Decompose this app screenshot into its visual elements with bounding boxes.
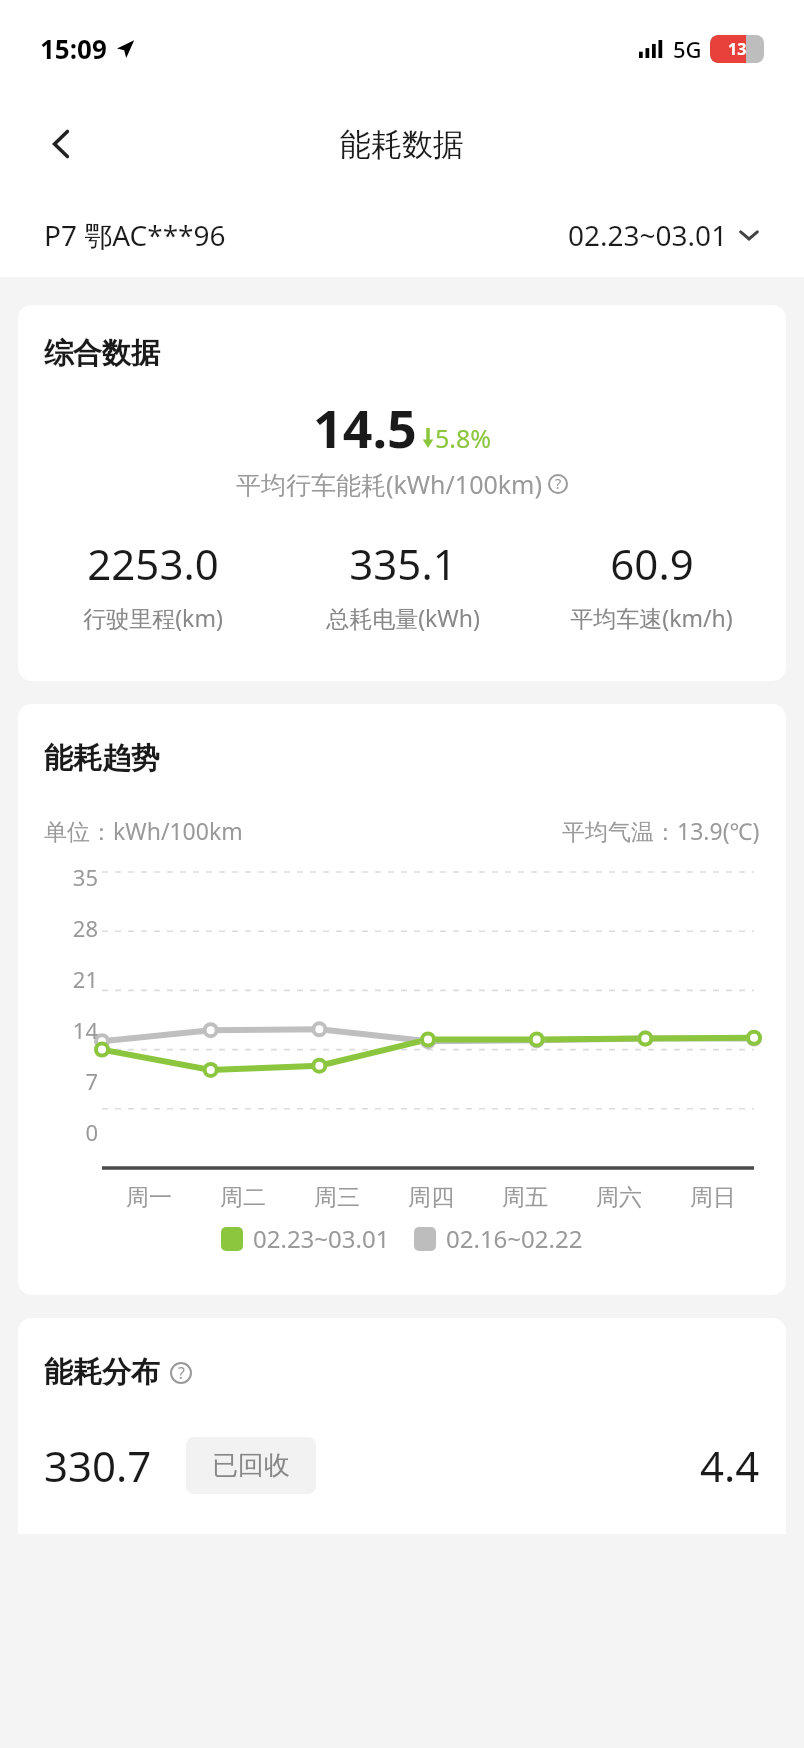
button[interactable]: 60.9 — [527, 535, 776, 633]
button[interactable]: 2253.0 — [28, 535, 278, 633]
staticText: 周一 — [126, 1183, 172, 1212]
staticText: 5G — [673, 34, 702, 64]
button[interactable]: 02.16~02.22 — [414, 1222, 583, 1255]
staticText: 已回收 — [212, 1449, 290, 1482]
staticText: 平均车速(km/h) — [570, 602, 733, 633]
staticText: 平均气温：13.9(℃) — [562, 815, 760, 846]
staticText: 21 — [72, 964, 98, 994]
staticText: 行驶里程(km) — [83, 602, 223, 633]
staticText: ? — [178, 1362, 185, 1384]
staticText: 7 — [85, 1066, 98, 1096]
staticText: 335.1 — [349, 535, 457, 592]
staticText: 4.4 — [700, 1437, 760, 1494]
staticText: 总耗电量(kWh) — [326, 602, 480, 633]
staticText: 能耗分布 — [44, 1354, 160, 1391]
staticText: 周四 — [408, 1183, 454, 1212]
staticText: 周五 — [502, 1183, 548, 1212]
staticText: 13 — [728, 38, 747, 60]
staticText: 02.23~03.01 — [253, 1222, 390, 1255]
staticText: 2253.0 — [87, 535, 219, 592]
staticText: 0 — [85, 1117, 98, 1147]
staticText: 35 — [72, 862, 98, 892]
staticText: 能耗数据 — [340, 125, 464, 164]
staticText: 单位：kWh/100km — [44, 815, 243, 846]
staticText: 5.8% — [435, 421, 492, 455]
staticText: 14.5 — [313, 392, 417, 463]
staticText: 能耗趋势 — [44, 740, 160, 777]
staticText: 平均行车能耗(kWh/100km) — [236, 467, 542, 501]
staticText: 周三 — [314, 1183, 360, 1212]
staticText: 综合数据 — [44, 335, 160, 372]
staticText: 02.23~03.01 — [568, 216, 728, 254]
staticText: 330.7 — [44, 1437, 152, 1494]
button[interactable]: 已回收 — [186, 1437, 316, 1494]
staticText: 60.9 — [610, 535, 694, 592]
button[interactable]: 335.1 — [278, 535, 527, 633]
button[interactable]: 02.23~03.01 — [568, 216, 760, 254]
button[interactable]: Back — [32, 114, 92, 174]
staticText: ? — [555, 474, 562, 494]
staticText: 14 — [72, 1015, 98, 1045]
staticText: 周日 — [690, 1183, 736, 1212]
staticText: 28 — [72, 913, 98, 943]
button[interactable]: 02.23~03.01 — [221, 1222, 390, 1255]
staticText: 周六 — [596, 1183, 642, 1212]
staticText: 周二 — [220, 1183, 266, 1212]
staticText: P7 鄂AC***96 — [44, 216, 226, 254]
staticText: 15:09 — [40, 31, 107, 66]
staticText: 02.16~02.22 — [446, 1222, 583, 1255]
